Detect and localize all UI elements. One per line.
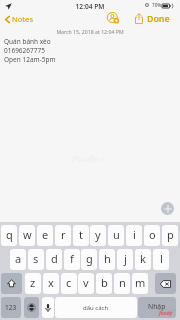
staticText: j (124, 251, 127, 266)
staticText: y (95, 227, 101, 242)
button[interactable]: a (10, 249, 26, 270)
button[interactable]: c (61, 273, 77, 294)
staticText: h (104, 251, 111, 266)
button[interactable]: h (99, 249, 115, 270)
staticText: c (66, 275, 72, 290)
button[interactable]: k (135, 249, 151, 270)
staticText: o (149, 227, 156, 242)
button[interactable]: j (117, 249, 133, 270)
button[interactable]: Dictate (42, 297, 54, 318)
button[interactable]: l (153, 249, 169, 270)
staticText: m (135, 275, 146, 290)
button[interactable]: w (19, 225, 35, 246)
staticText: z (30, 275, 36, 290)
staticText: b (101, 275, 108, 290)
staticText: n (119, 275, 126, 290)
button[interactable]: m (132, 273, 148, 294)
staticText: 12:04 PM (0, 2, 180, 11)
staticText: l (160, 251, 163, 266)
button[interactable]: Shift (1, 273, 22, 294)
staticText: Done (147, 13, 170, 25)
button[interactable]: i (126, 225, 142, 246)
button[interactable]: p (162, 225, 178, 246)
button[interactable]: z (25, 273, 41, 294)
staticText: 70% (152, 2, 162, 8)
button[interactable]: n (114, 273, 130, 294)
staticText: 123 (5, 303, 17, 312)
button[interactable]: r (55, 225, 71, 246)
staticText: e (42, 227, 49, 242)
button[interactable]: u (108, 225, 124, 246)
staticText: a (15, 251, 22, 266)
staticText: 01696267775 (4, 46, 45, 55)
button[interactable]: Add attachment (161, 202, 174, 215)
button[interactable]: Collaborate (106, 11, 120, 25)
staticText: s (33, 251, 39, 266)
staticText: v (83, 275, 89, 290)
staticText: Nhập (148, 302, 166, 311)
button[interactable]: Share (132, 11, 146, 25)
staticText: w (23, 227, 32, 242)
button[interactable]: Nhập (138, 297, 176, 318)
staticText: dấu cách (83, 304, 109, 312)
staticText: g (86, 251, 93, 266)
staticText: foody (159, 310, 173, 317)
button[interactable]: 123 (1, 297, 21, 318)
staticText: f (70, 251, 74, 266)
staticText: Open 12am-5pm (4, 55, 56, 64)
button[interactable]: x (43, 273, 59, 294)
button[interactable]: Switch keyboard (24, 297, 39, 318)
staticText: q (6, 227, 13, 242)
button[interactable]: b (96, 273, 112, 294)
staticText: Quán bánh xèo (4, 37, 51, 46)
button[interactable]: o (144, 225, 160, 246)
button[interactable]: y (90, 225, 106, 246)
staticText: Notes (12, 14, 34, 24)
staticText: March 15, 2018 at 12:04 PM (0, 28, 180, 35)
button[interactable]: f (64, 249, 80, 270)
staticText: p (167, 227, 174, 242)
button[interactable]: q (1, 225, 17, 246)
button[interactable]: Backspace (155, 273, 176, 294)
staticText: k (140, 251, 146, 266)
staticText: Foody.vn (158, 307, 176, 313)
button[interactable]: e (37, 225, 53, 246)
button[interactable]: dấu cách (55, 297, 137, 318)
button[interactable]: Done (144, 10, 173, 28)
button[interactable]: Notes (2, 12, 37, 26)
button[interactable]: v (78, 273, 94, 294)
staticText: u (113, 227, 120, 242)
staticText: r (61, 227, 66, 242)
button[interactable]: d (46, 249, 62, 270)
button[interactable]: g (81, 249, 97, 270)
button[interactable]: s (28, 249, 44, 270)
staticText: d (51, 251, 58, 266)
button[interactable]: t (73, 225, 89, 246)
staticText: i (133, 227, 136, 242)
staticText: t (79, 227, 83, 242)
staticText: x (48, 275, 54, 290)
